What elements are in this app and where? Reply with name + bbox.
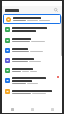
button[interactable] bbox=[2, 35, 62, 45]
button[interactable] bbox=[2, 75, 62, 86]
button[interactable] bbox=[2, 65, 62, 75]
button[interactable] bbox=[2, 55, 62, 65]
button[interactable]: Contacts bbox=[22, 106, 42, 113]
button[interactable] bbox=[2, 45, 62, 55]
button[interactable]: Mail bbox=[2, 106, 22, 113]
button[interactable] bbox=[3, 14, 61, 24]
button[interactable] bbox=[2, 24, 62, 35]
button[interactable] bbox=[2, 86, 62, 97]
button[interactable]: Search bbox=[2, 6, 62, 14]
button[interactable]: Settings bbox=[42, 106, 62, 113]
button[interactable]: Search bbox=[53, 7, 59, 13]
